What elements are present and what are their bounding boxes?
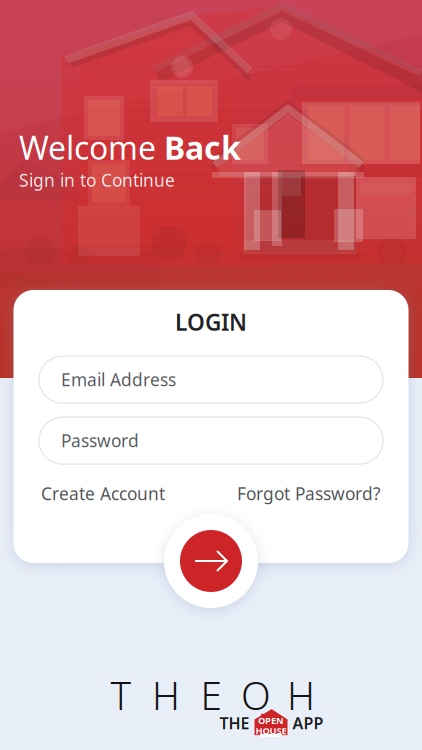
staticText: Sign in to Continue	[19, 168, 175, 191]
staticText: THE	[219, 712, 249, 734]
staticText: Create Account	[41, 482, 165, 505]
button[interactable]: Create Account	[41, 482, 165, 505]
staticText: Password	[61, 429, 139, 452]
staticText: H	[287, 669, 315, 721]
staticText: Forgot Password?	[237, 482, 381, 505]
staticText: Back	[164, 126, 241, 168]
staticText: E	[200, 669, 221, 721]
button[interactable]: Forgot Password?	[237, 482, 381, 505]
staticText: H	[152, 669, 180, 721]
staticText: Email Address	[61, 368, 176, 391]
staticText: HOUSE	[255, 724, 286, 737]
staticText: APP	[292, 712, 323, 734]
staticText: O	[241, 669, 271, 721]
staticText: LOGIN	[175, 307, 247, 337]
staticText: T	[110, 669, 131, 721]
button[interactable]: Sign In	[164, 514, 258, 608]
staticText: Welcome	[19, 126, 164, 168]
staticText: OPEN	[258, 714, 284, 726]
